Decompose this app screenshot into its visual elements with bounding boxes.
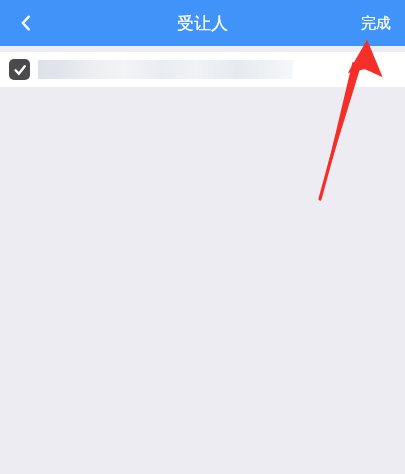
button[interactable]: Back — [0, 0, 52, 46]
staticText: 受让人 — [177, 13, 228, 34]
other: Selected — [9, 59, 30, 80]
button[interactable]: Selected — [0, 52, 405, 87]
staticText: 完成 — [361, 14, 391, 33]
button[interactable]: 完成 — [347, 0, 405, 46]
